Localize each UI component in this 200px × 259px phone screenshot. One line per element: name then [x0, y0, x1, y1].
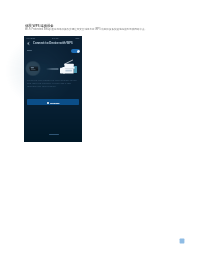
- staticText: Wi-Fi Protected Setup 通过简单的操作步骤让您安全地将支持 …: [25, 27, 148, 30]
- staticText: 9:41 AM: [52, 37, 59, 39]
- staticText: Connect: [50, 101, 60, 104]
- button[interactable]: Back: [26, 41, 30, 45]
- button[interactable]: Connect: [27, 99, 79, 105]
- staticText: Press the WPS button on your wireless ro…: [27, 78, 78, 87]
- staticText: ••••• Carrier: [26, 37, 36, 39]
- staticText: WPS: [27, 49, 32, 52]
- staticText: Connect to Device with WPS: [33, 41, 73, 45]
- staticText: 使用 WPS 连接设备: [25, 23, 54, 28]
- staticText: 100%: [75, 37, 80, 39]
- button[interactable]: WPS: [27, 47, 80, 54]
